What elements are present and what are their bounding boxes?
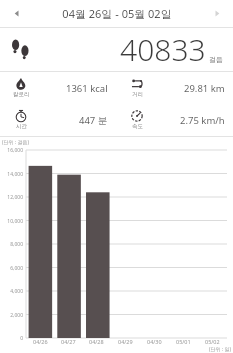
staticText: 40833 <box>120 29 206 70</box>
staticText: 4,000 <box>0 288 23 295</box>
button[interactable]: 40833 <box>0 28 233 71</box>
staticText: 04/28 <box>89 338 104 345</box>
staticText: 시간 <box>16 123 27 130</box>
button[interactable]: Previous week <box>0 0 32 27</box>
staticText: 04/30 <box>147 338 162 345</box>
button[interactable]: 시간 <box>0 104 116 136</box>
button[interactable]: 속도 <box>116 104 233 136</box>
staticText: (단위 : 걸음) <box>2 139 29 146</box>
staticText: 0 <box>0 335 23 342</box>
staticText: 29.81 km <box>184 82 225 95</box>
button[interactable]: Next week <box>201 0 233 27</box>
staticText: 거리 <box>132 91 143 98</box>
staticText: 04/27 <box>61 338 76 345</box>
staticText: 2,000 <box>0 312 23 319</box>
staticText: 05/01 <box>176 338 191 345</box>
staticText: 속도 <box>132 123 143 130</box>
staticText: 10,000 <box>0 218 23 225</box>
staticText: 8,000 <box>0 241 23 248</box>
staticText: 447 분 <box>79 114 108 127</box>
staticText: 04월 26일 - 05월 02일 <box>62 6 172 21</box>
staticText: 걸음 <box>209 55 223 64</box>
staticText: 1361 kcal <box>66 82 108 95</box>
staticText: (단위 : 일) <box>209 346 231 353</box>
staticText: 칼로리 <box>13 91 30 98</box>
staticText: 6,000 <box>0 265 23 272</box>
button[interactable]: 칼로리 <box>0 72 116 104</box>
button[interactable]: 거리 <box>116 72 233 104</box>
staticText: 12,000 <box>0 194 23 201</box>
staticText: 16,000 <box>0 147 23 154</box>
staticText: 04/26 <box>33 338 48 345</box>
staticText: 04/29 <box>118 338 133 345</box>
staticText: 14,000 <box>0 171 23 178</box>
staticText: 05/02 <box>205 338 220 345</box>
staticText: 2.75 km/h <box>180 114 225 127</box>
